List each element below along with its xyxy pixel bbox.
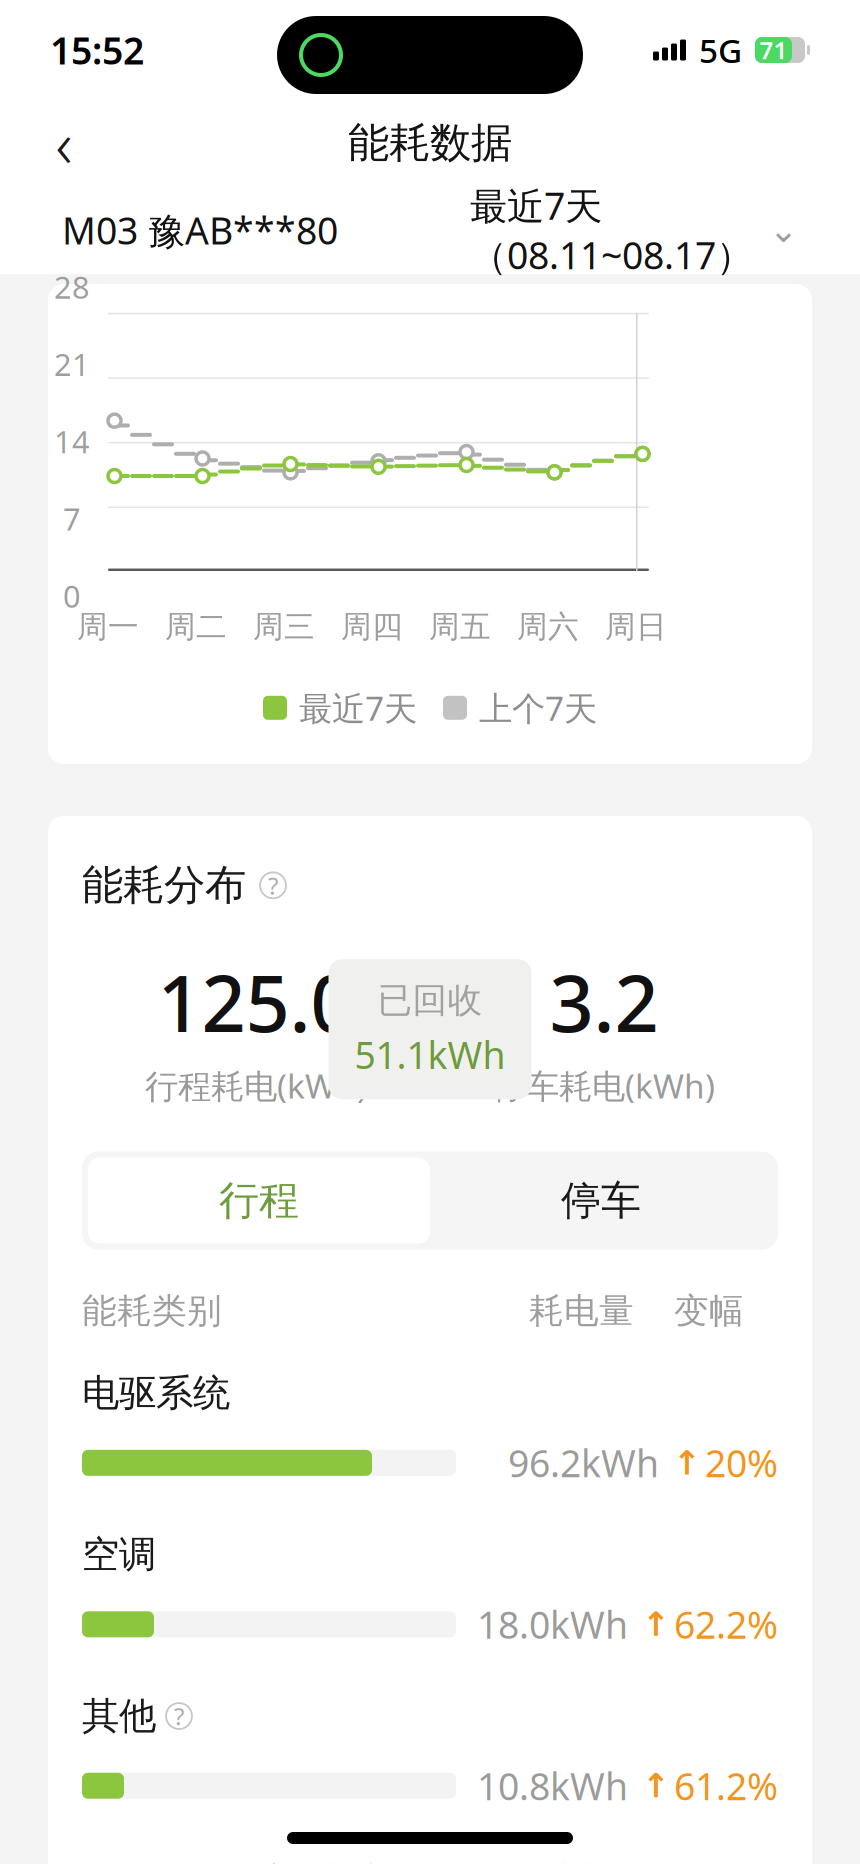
staticText: 21 [54,344,90,384]
staticText: ↑ [673,1444,701,1482]
staticText: 51.1kWh [354,1030,505,1079]
staticText: 上个7天 [479,686,597,730]
staticText: 行程 [219,1176,299,1225]
staticText: 周五 [429,608,491,646]
staticText: 电驱系统 [82,1370,230,1416]
staticText: 周六 [517,608,579,646]
staticText: 28 [54,266,90,307]
staticText: 10.8kWh [477,1761,628,1811]
staticText: 125.0 [157,951,354,1053]
button[interactable]: 最近7天（08.11~08.17） [470,180,798,280]
staticText: ↑ [642,1767,670,1805]
staticText: 71 [759,34,787,66]
staticText: 周日 [605,608,667,646]
staticText: 3.2 [549,951,658,1053]
staticText: 已回收 [377,979,482,1022]
staticText: ? [268,869,278,901]
staticText: 15:52 [50,25,144,75]
staticText: 停车 [561,1176,641,1225]
staticText: ‹ [55,100,72,185]
staticText: 能耗分布 [82,860,246,911]
staticText: ↑ [642,1605,670,1643]
staticText: 7 [63,498,81,539]
staticText: 62.2% [674,1599,778,1649]
staticText: 空调 [82,1532,156,1578]
staticText: ? [174,1700,184,1732]
button[interactable]: 能耗分布说明 [260,872,286,898]
staticText: 行程耗电(kWh) [145,1063,367,1108]
staticText: 最近7天（08.11~08.17） [470,180,753,280]
staticText: 能耗类别 [82,1290,222,1332]
staticText: 停车耗电(kWh) [493,1063,715,1108]
staticText: 周四 [341,608,403,646]
button[interactable]: 停车 [430,1158,772,1244]
staticText: 61.2% [674,1761,778,1811]
staticText: 18.0kWh [477,1599,628,1649]
staticText: 14 [54,421,90,462]
staticText: 5G [699,28,742,72]
staticText: 其他 [82,1693,156,1739]
staticText: ⌄ [769,210,798,250]
staticText: 变幅 [674,1290,744,1332]
staticText: 0 [63,576,81,616]
staticText: 周二 [165,608,227,646]
staticText: 20% [705,1438,778,1488]
staticText: 能耗数据 [348,118,512,168]
staticText: 周三 [253,608,315,646]
staticText: 96.2kWh [508,1438,659,1488]
staticText: 周一 [77,608,139,646]
button[interactable]: 返回 [28,107,100,179]
staticText: 耗电量 [529,1290,634,1332]
staticText: M03 豫AB***80 [62,205,338,255]
staticText: 最近7天 [299,686,417,730]
button[interactable]: 行程 [88,1158,430,1244]
